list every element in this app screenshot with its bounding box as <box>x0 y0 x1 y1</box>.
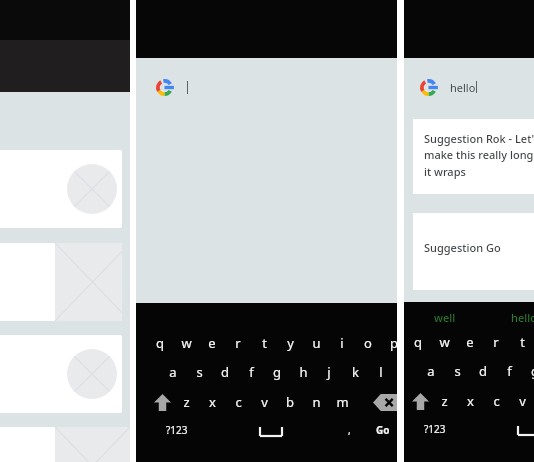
button[interactable] <box>0 150 122 228</box>
staticText: q <box>156 334 164 352</box>
staticText: x <box>209 393 216 411</box>
button[interactable]: ?123 <box>166 423 188 437</box>
staticText: s <box>196 363 203 381</box>
staticText: t <box>262 334 267 352</box>
staticText: x <box>467 392 474 410</box>
button[interactable] <box>156 74 188 100</box>
staticText: c <box>493 392 500 410</box>
staticText: , <box>348 423 351 437</box>
staticText: l <box>379 363 383 381</box>
staticText: hello <box>450 80 476 95</box>
button[interactable]: Suggestion Rok - Let's make this really … <box>413 119 534 194</box>
button[interactable]: Shift <box>150 390 174 414</box>
staticText: r <box>493 333 499 351</box>
staticText: g <box>531 362 534 380</box>
button[interactable]: Space <box>514 423 534 437</box>
staticText: s <box>454 362 461 380</box>
staticText: z <box>183 393 190 411</box>
staticText: t <box>520 333 525 351</box>
button[interactable]: hello <box>511 310 534 325</box>
staticText: ?123 <box>424 422 446 436</box>
staticText: hello <box>511 310 534 325</box>
staticText: c <box>235 393 242 411</box>
staticText: h <box>299 363 308 381</box>
staticText: n <box>312 393 321 411</box>
staticText: k <box>352 363 359 381</box>
button[interactable] <box>0 335 122 413</box>
staticText: b <box>286 393 294 411</box>
button[interactable]: , <box>348 423 351 437</box>
staticText: i <box>340 334 344 352</box>
button[interactable]: ?123 <box>424 422 446 436</box>
button[interactable]: well <box>434 310 456 325</box>
button[interactable]: Backspace <box>372 391 400 413</box>
staticText: f <box>249 363 254 381</box>
staticText: v <box>261 393 268 411</box>
staticText: Go <box>376 423 390 437</box>
staticText: p <box>390 334 398 352</box>
staticText: d <box>479 362 487 380</box>
staticText: q <box>414 333 422 351</box>
staticText: w <box>439 333 450 351</box>
button[interactable] <box>0 243 122 321</box>
staticText: e <box>208 334 216 352</box>
button[interactable]: Go <box>376 423 390 437</box>
staticText: v <box>519 392 526 410</box>
button[interactable]: Space <box>256 424 286 438</box>
staticText: ?123 <box>166 423 188 437</box>
button[interactable] <box>0 427 122 462</box>
staticText: f <box>507 362 512 380</box>
staticText: w <box>181 334 192 352</box>
staticText: z <box>441 392 448 410</box>
staticText: m <box>336 393 349 411</box>
staticText: e <box>466 333 474 351</box>
staticText: a <box>169 363 177 381</box>
staticText: Suggestion Go <box>424 240 501 255</box>
staticText: Suggestion Rok - Let's make this really … <box>424 131 534 180</box>
staticText: a <box>427 362 435 380</box>
button[interactable]: Suggestion Go <box>413 213 534 290</box>
button[interactable]: Shift <box>408 389 432 413</box>
staticText: g <box>273 363 281 381</box>
staticText: d <box>221 363 229 381</box>
staticText: o <box>364 334 372 352</box>
staticText: well <box>434 310 456 325</box>
staticText: u <box>312 334 321 352</box>
button[interactable]: hello <box>420 74 477 100</box>
staticText: r <box>235 334 241 352</box>
staticText: j <box>327 363 331 381</box>
staticText: y <box>287 334 294 352</box>
